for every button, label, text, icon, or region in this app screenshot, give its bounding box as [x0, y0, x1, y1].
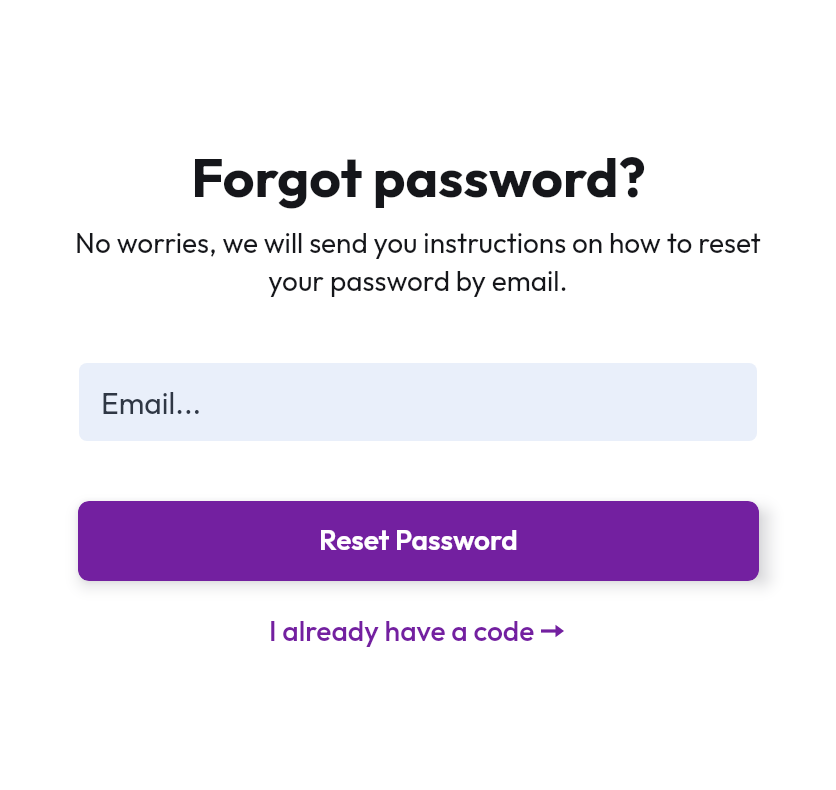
button[interactable]: Email...	[79, 363, 757, 441]
staticText: Reset Password	[319, 522, 518, 557]
button[interactable]: I already have a code	[259, 605, 574, 657]
staticText: I already have a code	[269, 613, 535, 649]
staticText: No worries, we will send you instruction…	[68, 225, 768, 298]
other: Continue	[541, 624, 564, 638]
button[interactable]: Reset Password	[78, 501, 759, 581]
staticText: Email...	[101, 384, 202, 422]
staticText: Forgot password?	[191, 142, 646, 211]
